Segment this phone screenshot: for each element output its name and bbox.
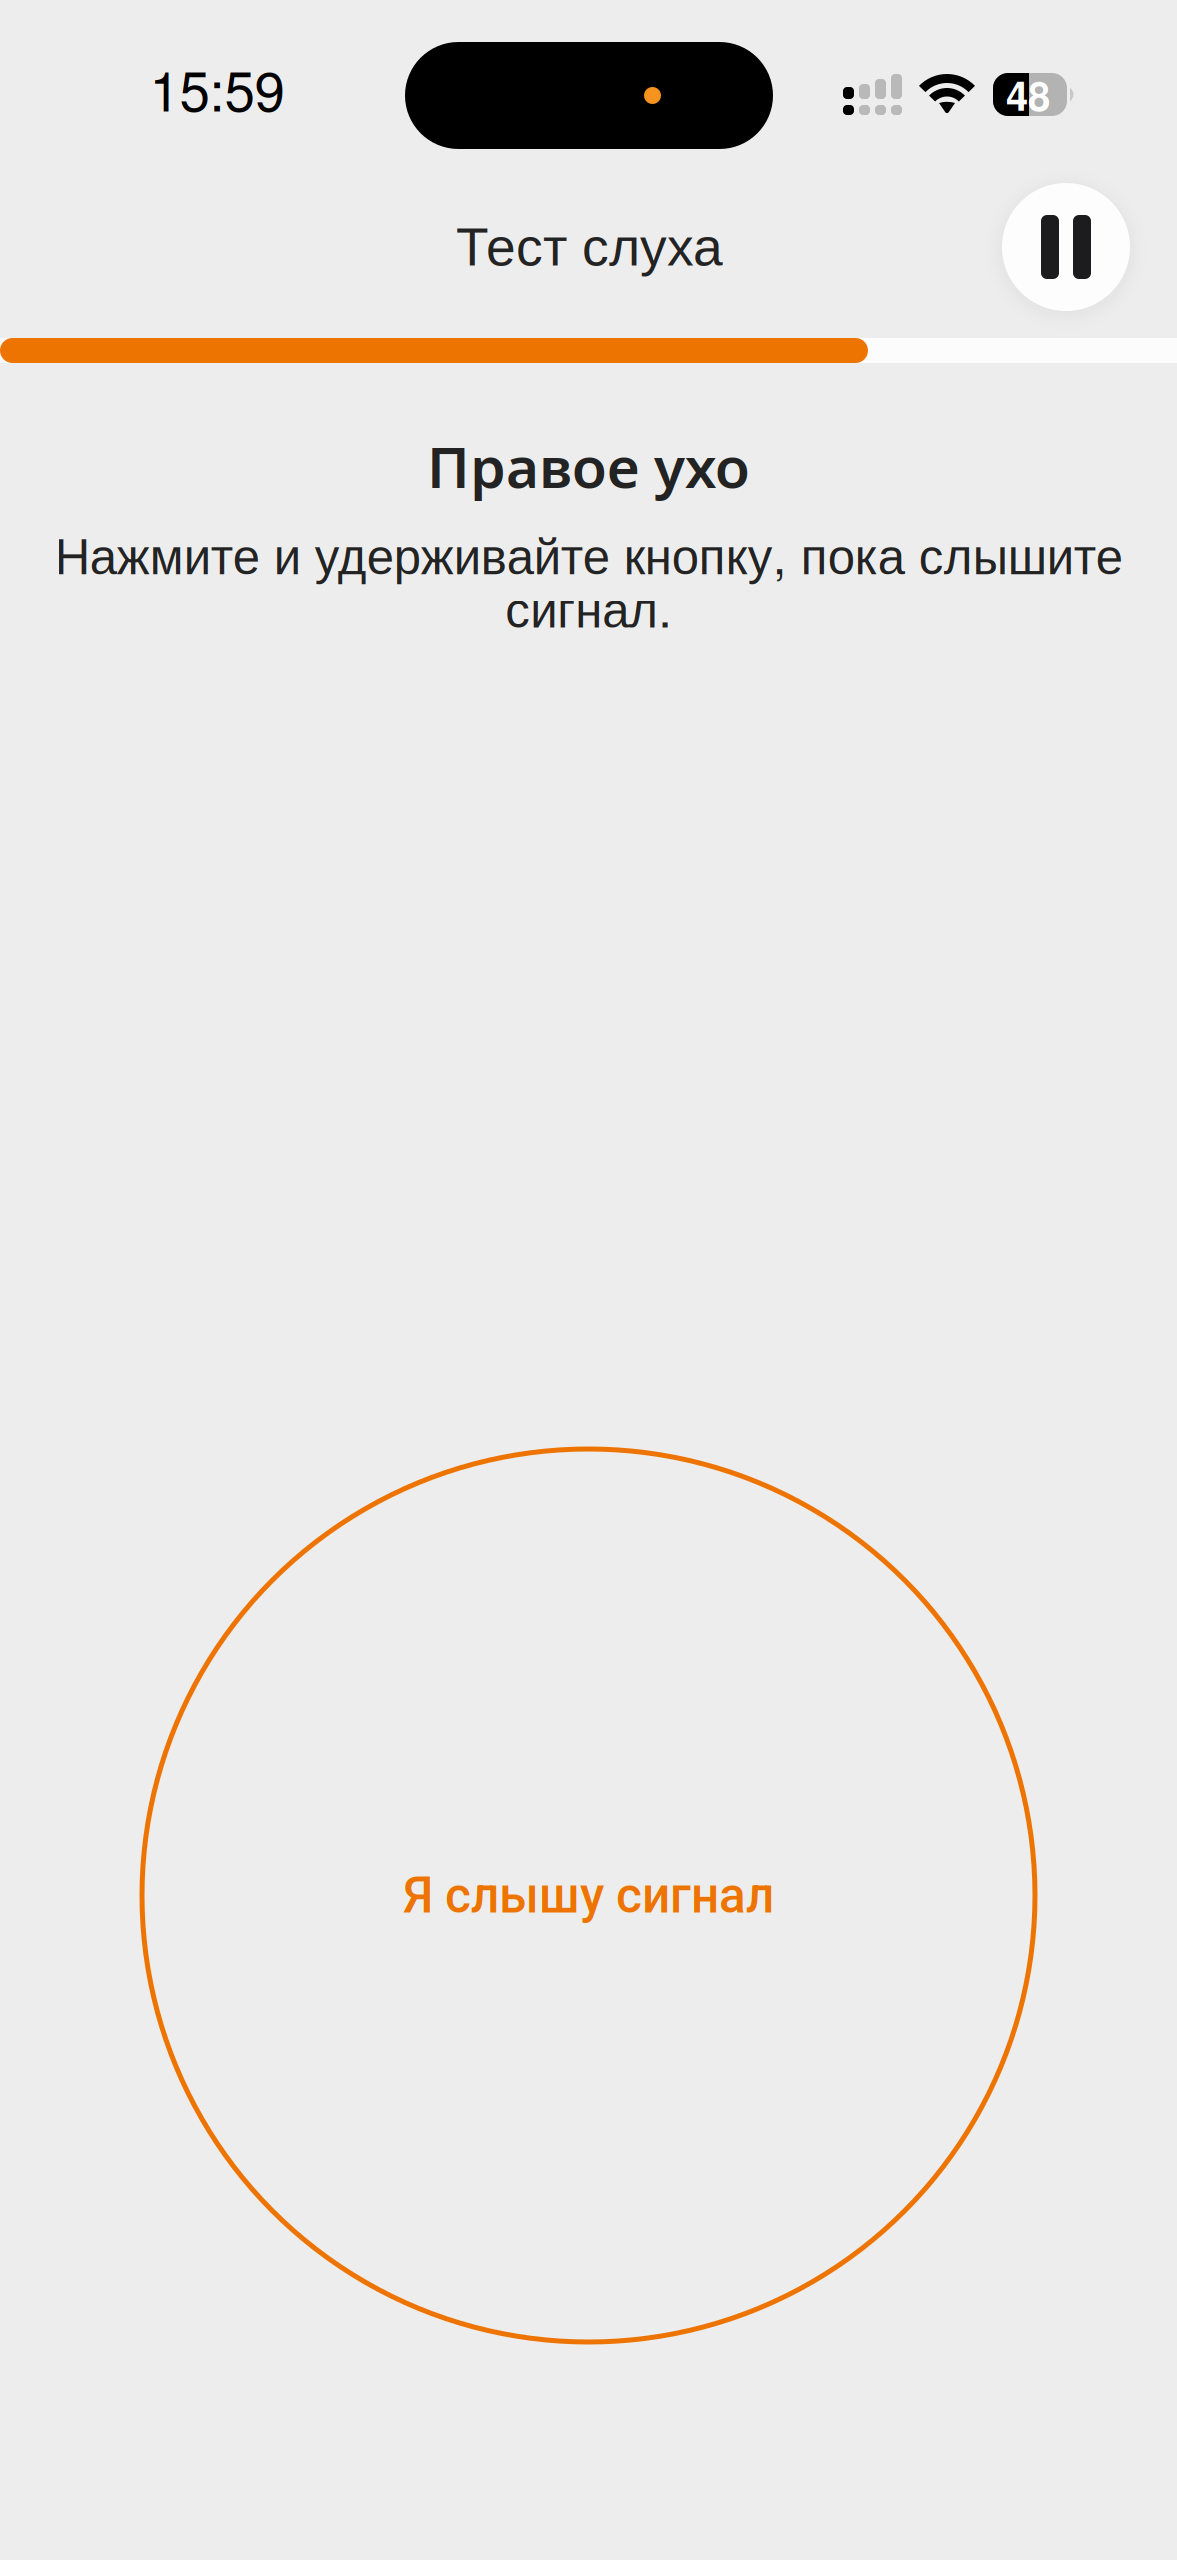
staticText: Я слышу сигнал (403, 1866, 774, 1924)
staticText: Нажмите и удерживайте кнопку, пока слыши… (54, 518, 1122, 641)
button[interactable]: Я слышу сигнал (142, 1449, 1035, 2342)
button[interactable]: Pause test (1002, 183, 1130, 311)
staticText: 15:59 (149, 49, 284, 127)
staticText: Правое ухо (427, 427, 750, 505)
staticText: Тест слуха (456, 217, 723, 277)
staticText: 48 (1006, 66, 1050, 123)
